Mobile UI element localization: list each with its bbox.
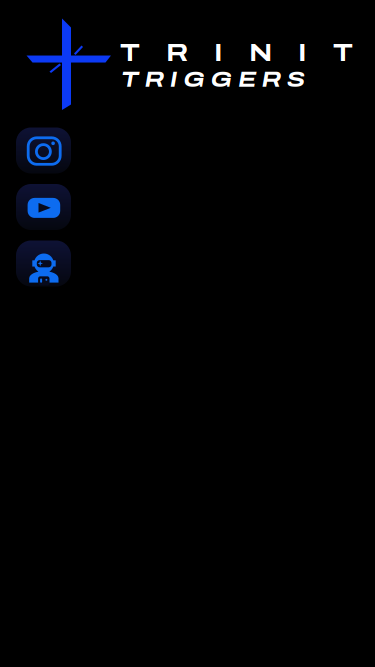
button[interactable]: Profile [16,240,71,286]
staticText: TRIGGERS [121,68,317,91]
button[interactable]: Instagram [16,127,71,173]
staticText: TRINITY [120,40,375,66]
button[interactable]: YouTube [16,184,71,230]
